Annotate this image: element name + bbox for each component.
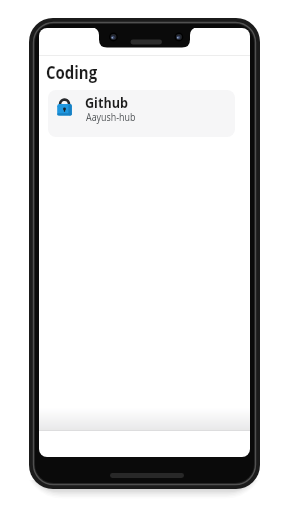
staticText: Aayush-hub — [86, 110, 136, 124]
button[interactable]: Github — [48, 90, 235, 137]
staticText: Coding — [46, 61, 98, 84]
staticText: Github — [85, 93, 128, 112]
